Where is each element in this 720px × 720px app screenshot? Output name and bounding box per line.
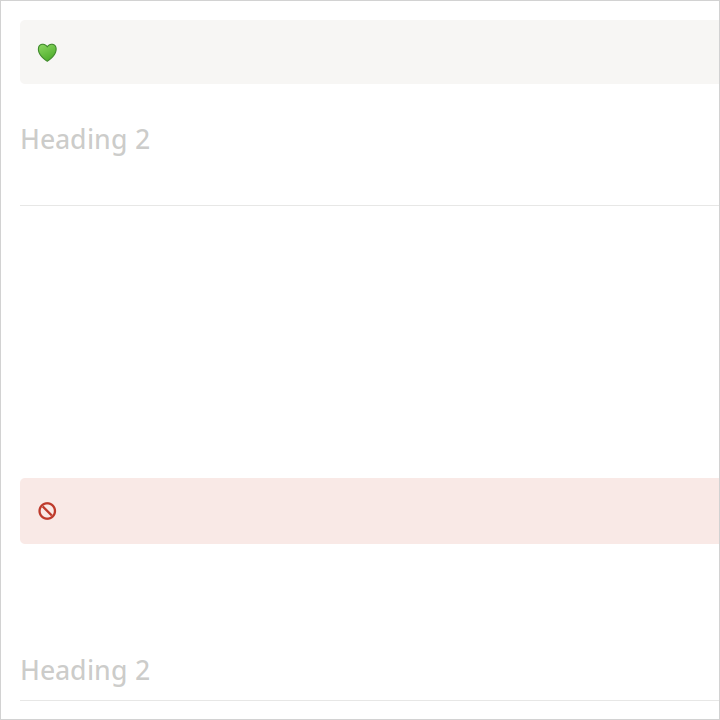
staticText: Heading 2 xyxy=(20,121,150,156)
button[interactable]: Success xyxy=(20,20,720,84)
button[interactable]: Error xyxy=(20,478,720,544)
staticText: Heading 2 xyxy=(20,652,150,687)
